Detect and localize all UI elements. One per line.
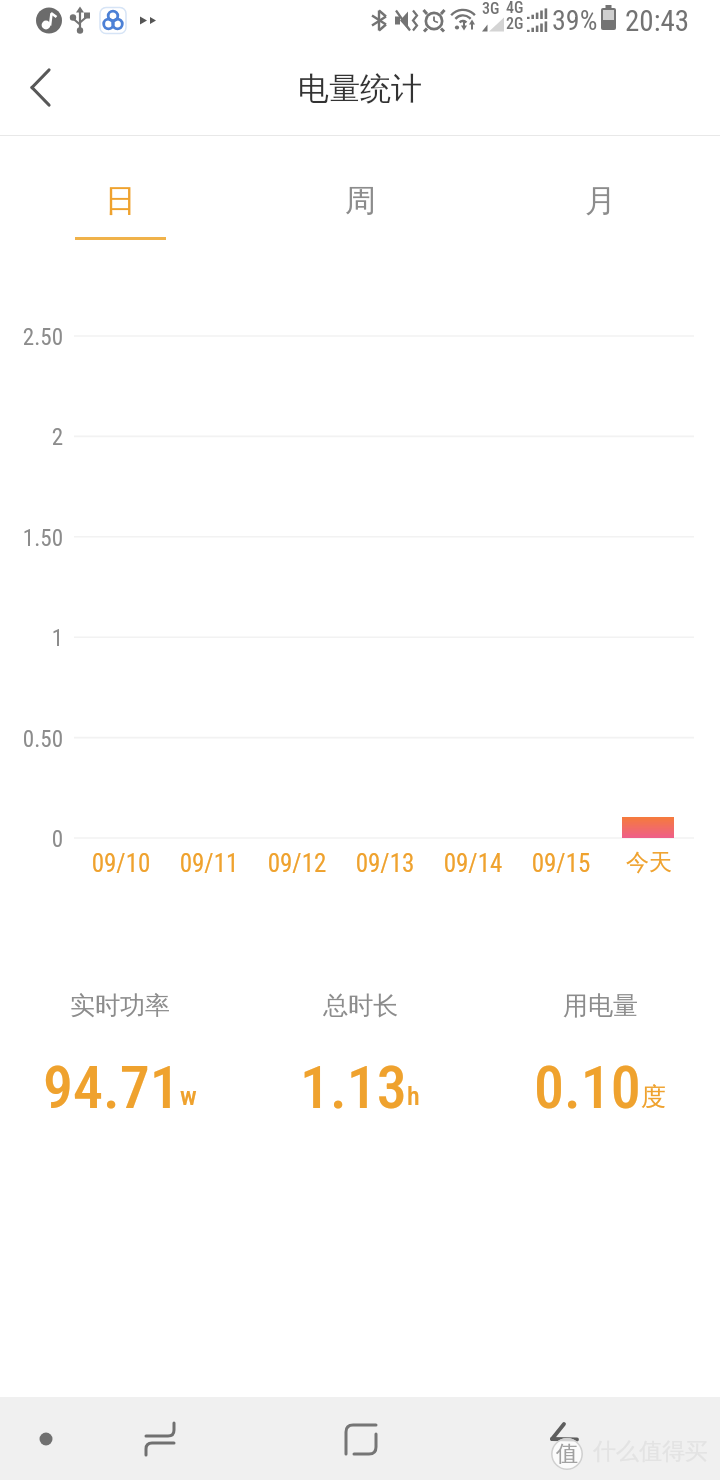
staticText: 今天 [605, 848, 693, 877]
staticText: 电量统计 [298, 69, 422, 108]
button[interactable]: Back [0, 52, 83, 135]
staticText: 09/12 [253, 849, 341, 878]
button[interactable]: Back [120, 1399, 200, 1479]
staticText: 3G [482, 0, 500, 18]
button[interactable]: Back arrow [524, 1399, 604, 1479]
staticText: 0 [1, 826, 63, 853]
staticText: 1.13 [300, 1052, 407, 1122]
staticText: 度 [641, 1081, 666, 1112]
staticText: 1 [1, 625, 63, 652]
button[interactable]: Home [321, 1399, 401, 1479]
button[interactable]: 月 [480, 136, 720, 256]
staticText: 值 [556, 1440, 578, 1468]
staticText: 09/14 [429, 849, 517, 878]
staticText: 4G [506, 0, 524, 17]
staticText: 94.71 [43, 1052, 180, 1122]
staticText: 09/15 [517, 849, 605, 878]
staticText: 39% [552, 4, 598, 37]
staticText: 20:43 [625, 4, 690, 38]
staticText: 0.50 [1, 726, 63, 753]
button[interactable]: 日 [0, 136, 240, 256]
staticText: 周 [345, 181, 376, 220]
staticText: 0.10 [534, 1052, 641, 1122]
staticText: h [407, 1081, 420, 1111]
staticText: w [180, 1081, 197, 1111]
staticText: 实时功率 [70, 990, 170, 1021]
staticText: 什么值得买 [593, 1437, 708, 1466]
staticText: 总时长 [323, 990, 398, 1021]
staticText: 月 [585, 181, 616, 220]
staticText: 09/13 [341, 849, 429, 878]
staticText: 09/10 [77, 849, 165, 878]
button[interactable]: Menu [6, 1399, 86, 1479]
staticText: 2G [506, 14, 524, 33]
staticText: 2 [1, 424, 63, 451]
staticText: 1.50 [1, 525, 63, 552]
button[interactable]: 周 [240, 136, 480, 256]
staticText: 日 [105, 181, 136, 220]
staticText: 2.50 [1, 324, 63, 351]
staticText: 09/11 [165, 849, 253, 878]
staticText: 用电量 [563, 990, 638, 1021]
